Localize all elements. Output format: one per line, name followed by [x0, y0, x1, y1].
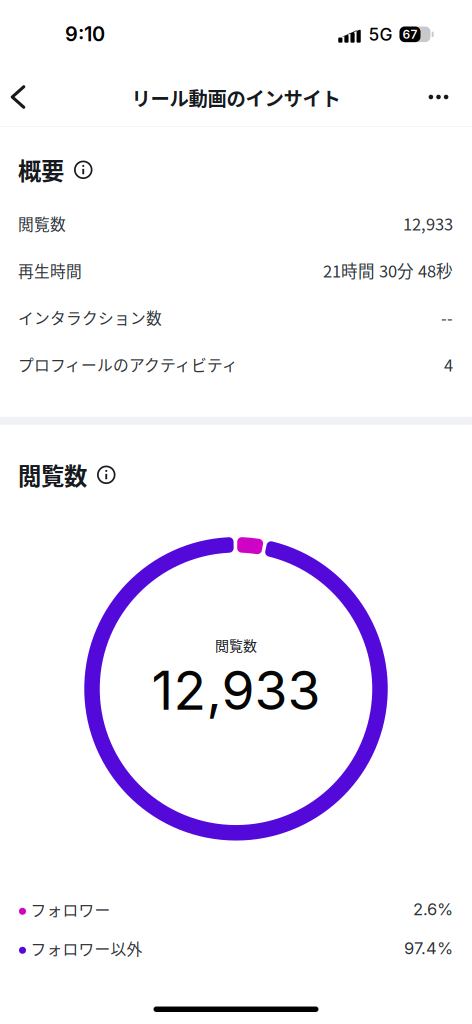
staticText: インタラクション数: [18, 306, 162, 329]
staticText: 97.4%: [404, 938, 453, 958]
button[interactable]: インタラクション数: [0, 294, 472, 341]
staticText: 12,933: [403, 211, 453, 235]
staticText: 閲覧数: [18, 458, 87, 492]
staticText: --: [441, 305, 453, 329]
button[interactable]: 概要について: [64, 157, 98, 183]
button[interactable]: 閲覧数: [0, 200, 472, 247]
staticText: プロフィールのアクティビティ: [18, 353, 238, 376]
button[interactable]: 再生時間: [0, 247, 472, 294]
staticText: 2.6%: [413, 899, 453, 919]
staticText: 閲覧数: [215, 635, 257, 655]
button[interactable]: その他のオプション: [416, 75, 460, 119]
staticText: 21時間 30分 48秒: [323, 258, 453, 282]
button[interactable]: 戻る: [0, 72, 36, 121]
staticText: フォロワー: [30, 898, 110, 921]
staticText: リール動画のインサイト: [131, 83, 340, 111]
staticText: 概要: [18, 153, 64, 187]
staticText: 9:10: [65, 22, 105, 46]
staticText: 4: [444, 352, 453, 376]
staticText: フォロワー以外: [30, 937, 142, 960]
staticText: 5G: [368, 24, 392, 45]
staticText: 閲覧数: [18, 212, 66, 235]
staticText: 12,933: [151, 658, 320, 722]
staticText: 67: [402, 27, 417, 41]
button[interactable]: プロフィールのアクティビティ: [0, 341, 472, 388]
button[interactable]: 閲覧数について: [87, 462, 121, 488]
staticText: 再生時間: [18, 259, 82, 282]
